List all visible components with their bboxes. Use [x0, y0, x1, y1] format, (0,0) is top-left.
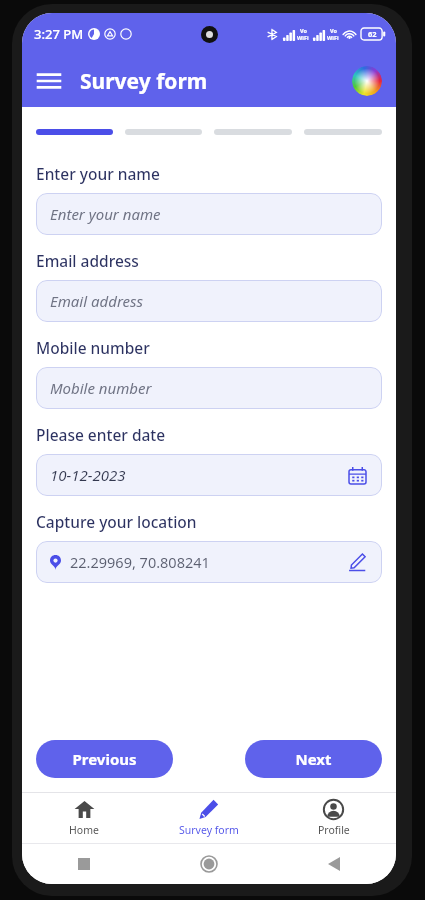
staticText: 10-12-2023 — [50, 465, 346, 485]
button[interactable]: Step 4 — [304, 129, 382, 135]
staticText: Vo — [300, 27, 307, 34]
staticText: 3:27 PM — [34, 25, 84, 43]
button[interactable]: Recent apps — [22, 844, 146, 884]
staticText: Survey form — [80, 67, 208, 96]
staticText: Enter your name — [50, 204, 161, 224]
button[interactable]: Step 3 — [214, 129, 292, 135]
staticText: Email address — [50, 291, 144, 311]
other: Edit location — [346, 551, 368, 573]
staticText: WiFi — [327, 34, 339, 41]
button[interactable]: Survey form — [146, 793, 271, 843]
staticText: Enter your name — [36, 163, 160, 184]
button[interactable]: Back — [271, 844, 396, 884]
button[interactable]: Step 2 — [125, 129, 202, 135]
staticText: Home — [69, 823, 99, 837]
button[interactable]: Profile avatar — [352, 66, 382, 96]
button[interactable]: Profile — [271, 793, 396, 843]
button[interactable]: 22.29969, 70.808241 — [36, 541, 382, 583]
button[interactable]: Next — [245, 740, 382, 778]
staticText: Please enter date — [36, 424, 166, 445]
button[interactable]: Mobile number — [36, 367, 382, 409]
button[interactable]: Step 1 — [36, 129, 113, 135]
button[interactable]: Email address — [36, 280, 382, 322]
staticText: Capture your location — [36, 511, 197, 532]
button[interactable]: Enter your name — [36, 193, 382, 235]
other: Pick date — [346, 464, 368, 486]
staticText: WiFi — [297, 34, 309, 41]
staticText: 62 — [368, 29, 377, 39]
staticText: Survey form — [179, 823, 239, 837]
staticText: Email address — [36, 250, 139, 271]
button[interactable]: Home — [22, 793, 146, 843]
staticText: 22.29969, 70.808241 — [70, 552, 346, 572]
staticText: Vo — [330, 27, 337, 34]
button[interactable]: Previous — [36, 740, 173, 778]
button[interactable]: Home — [146, 844, 271, 884]
staticText: Mobile number — [50, 378, 152, 398]
staticText: Next — [295, 749, 332, 769]
button[interactable]: 10-12-2023 — [36, 454, 382, 496]
button[interactable]: Open navigation menu — [30, 62, 68, 100]
staticText: Profile — [318, 823, 350, 837]
staticText: Previous — [72, 749, 137, 769]
staticText: Mobile number — [36, 337, 150, 358]
